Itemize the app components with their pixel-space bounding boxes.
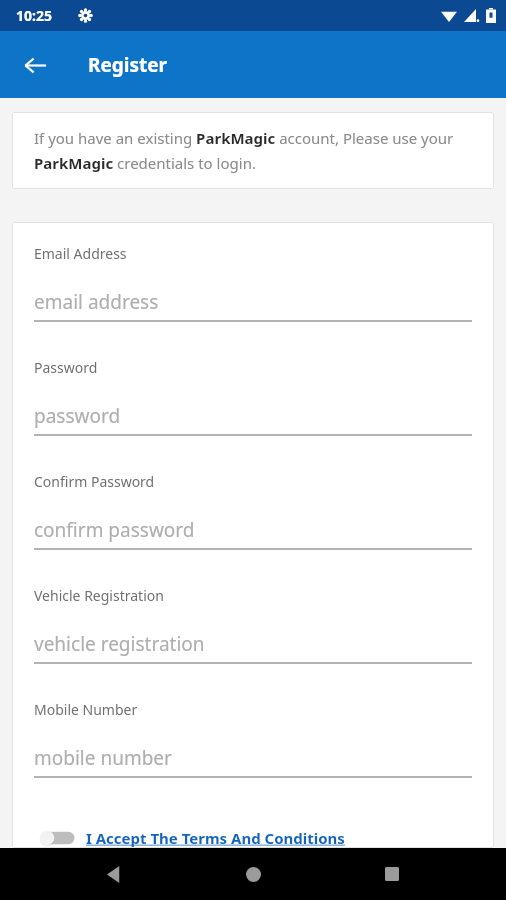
staticText: Email Address: [34, 244, 127, 263]
staticText: email address: [34, 289, 159, 315]
staticText: I Accept The Terms And Conditions: [86, 828, 345, 848]
staticText: Register: [88, 52, 168, 78]
staticText: vehicle registration: [34, 631, 205, 657]
button[interactable]: Confirm Password: [34, 472, 472, 586]
button[interactable]: Mobile Number: [34, 700, 472, 814]
button[interactable]: I Accept The Terms And Conditions: [34, 828, 472, 848]
staticText: Vehicle Registration: [34, 586, 164, 605]
staticText: mobile number: [34, 745, 172, 771]
button[interactable]: Recent apps: [368, 850, 416, 898]
staticText: Confirm Password: [34, 472, 155, 491]
button[interactable]: Home: [229, 850, 277, 898]
button[interactable]: Back: [12, 42, 58, 88]
staticText: Password: [34, 358, 98, 377]
staticText: Mobile Number: [34, 700, 138, 719]
staticText: confirm password: [34, 517, 195, 543]
staticText: password: [34, 403, 121, 429]
button[interactable]: Back: [91, 850, 139, 898]
button[interactable]: Email Address: [34, 244, 472, 358]
staticText: If you have an existing ParkMagic accoun…: [34, 128, 472, 173]
staticText: 10:25: [16, 6, 52, 25]
button[interactable]: Vehicle Registration: [34, 586, 472, 700]
button[interactable]: Password: [34, 358, 472, 472]
